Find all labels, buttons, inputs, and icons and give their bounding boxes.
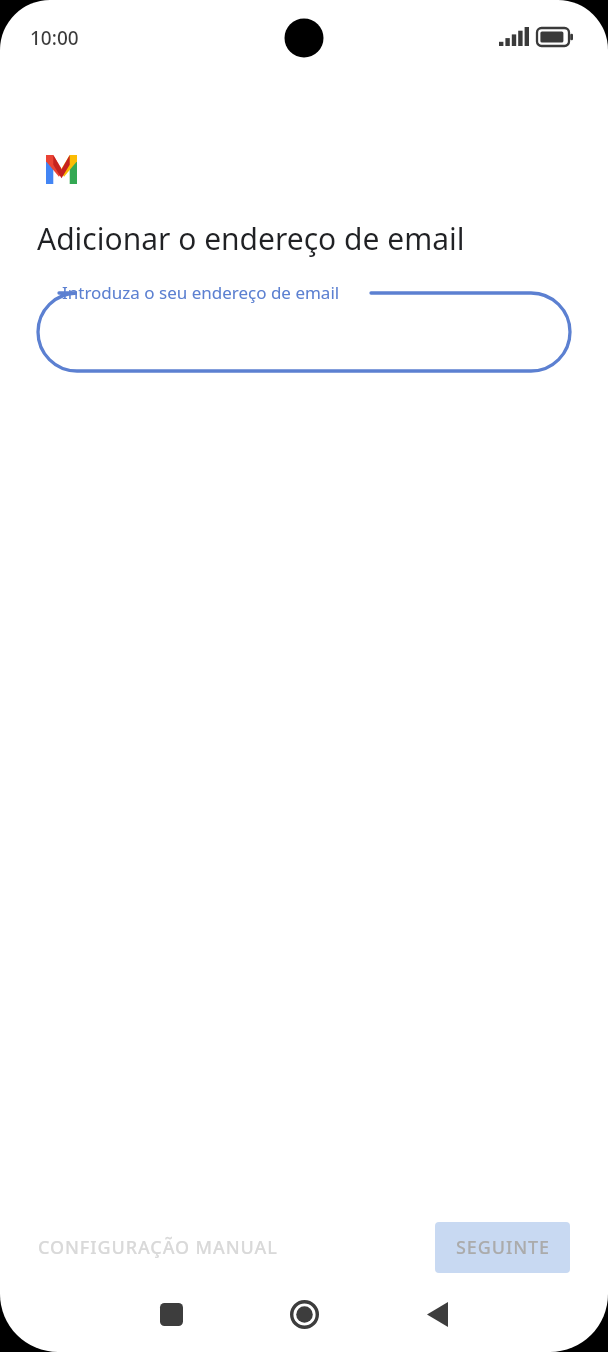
button[interactable]: Introduza o seu endereço de email (38, 282, 570, 374)
staticText: SEGUINTE (456, 1235, 550, 1260)
button[interactable]: Recent apps (141, 1284, 201, 1344)
staticText: Introduza o seu endereço de email (62, 281, 340, 304)
button[interactable]: Back (407, 1284, 467, 1344)
button[interactable]: SEGUINTE (435, 1222, 570, 1273)
button[interactable]: CONFIGURAÇÃO MANUAL (0, 1220, 296, 1275)
staticText: Adicionar o endereço de email (37, 218, 465, 259)
staticText: 10:00 (30, 25, 79, 51)
button[interactable]: Home (274, 1284, 334, 1344)
staticText: CONFIGURAÇÃO MANUAL (38, 1235, 278, 1260)
